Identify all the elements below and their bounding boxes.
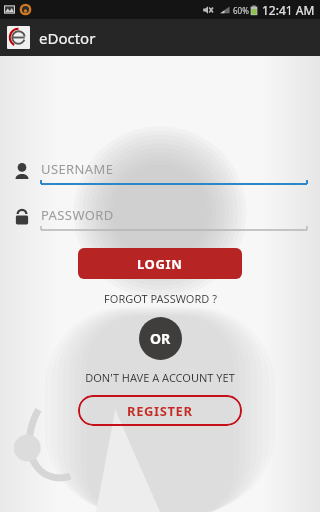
staticText: eDoctor [39, 28, 96, 48]
staticText: LOGIN [137, 255, 183, 273]
button[interactable]: FORGOT PASSWORD ? [96, 289, 225, 308]
staticText: DON'T HAVE A ACCOUNT YET [85, 370, 235, 385]
button[interactable]: USERNAME [13, 156, 307, 186]
staticText: 12:41 AM [262, 2, 315, 18]
button[interactable]: LOGIN [78, 248, 242, 279]
button[interactable]: REGISTER [78, 395, 242, 426]
staticText: REGISTER [127, 402, 193, 420]
staticText: FORGOT PASSWORD ? [104, 291, 217, 306]
staticText: 60% [233, 5, 249, 16]
staticText: PASSWORD [41, 206, 114, 224]
button[interactable]: PASSWORD [13, 202, 307, 232]
other: eDoctor logo [7, 26, 30, 49]
staticText: OR [150, 329, 171, 348]
staticText: USERNAME [41, 160, 114, 178]
